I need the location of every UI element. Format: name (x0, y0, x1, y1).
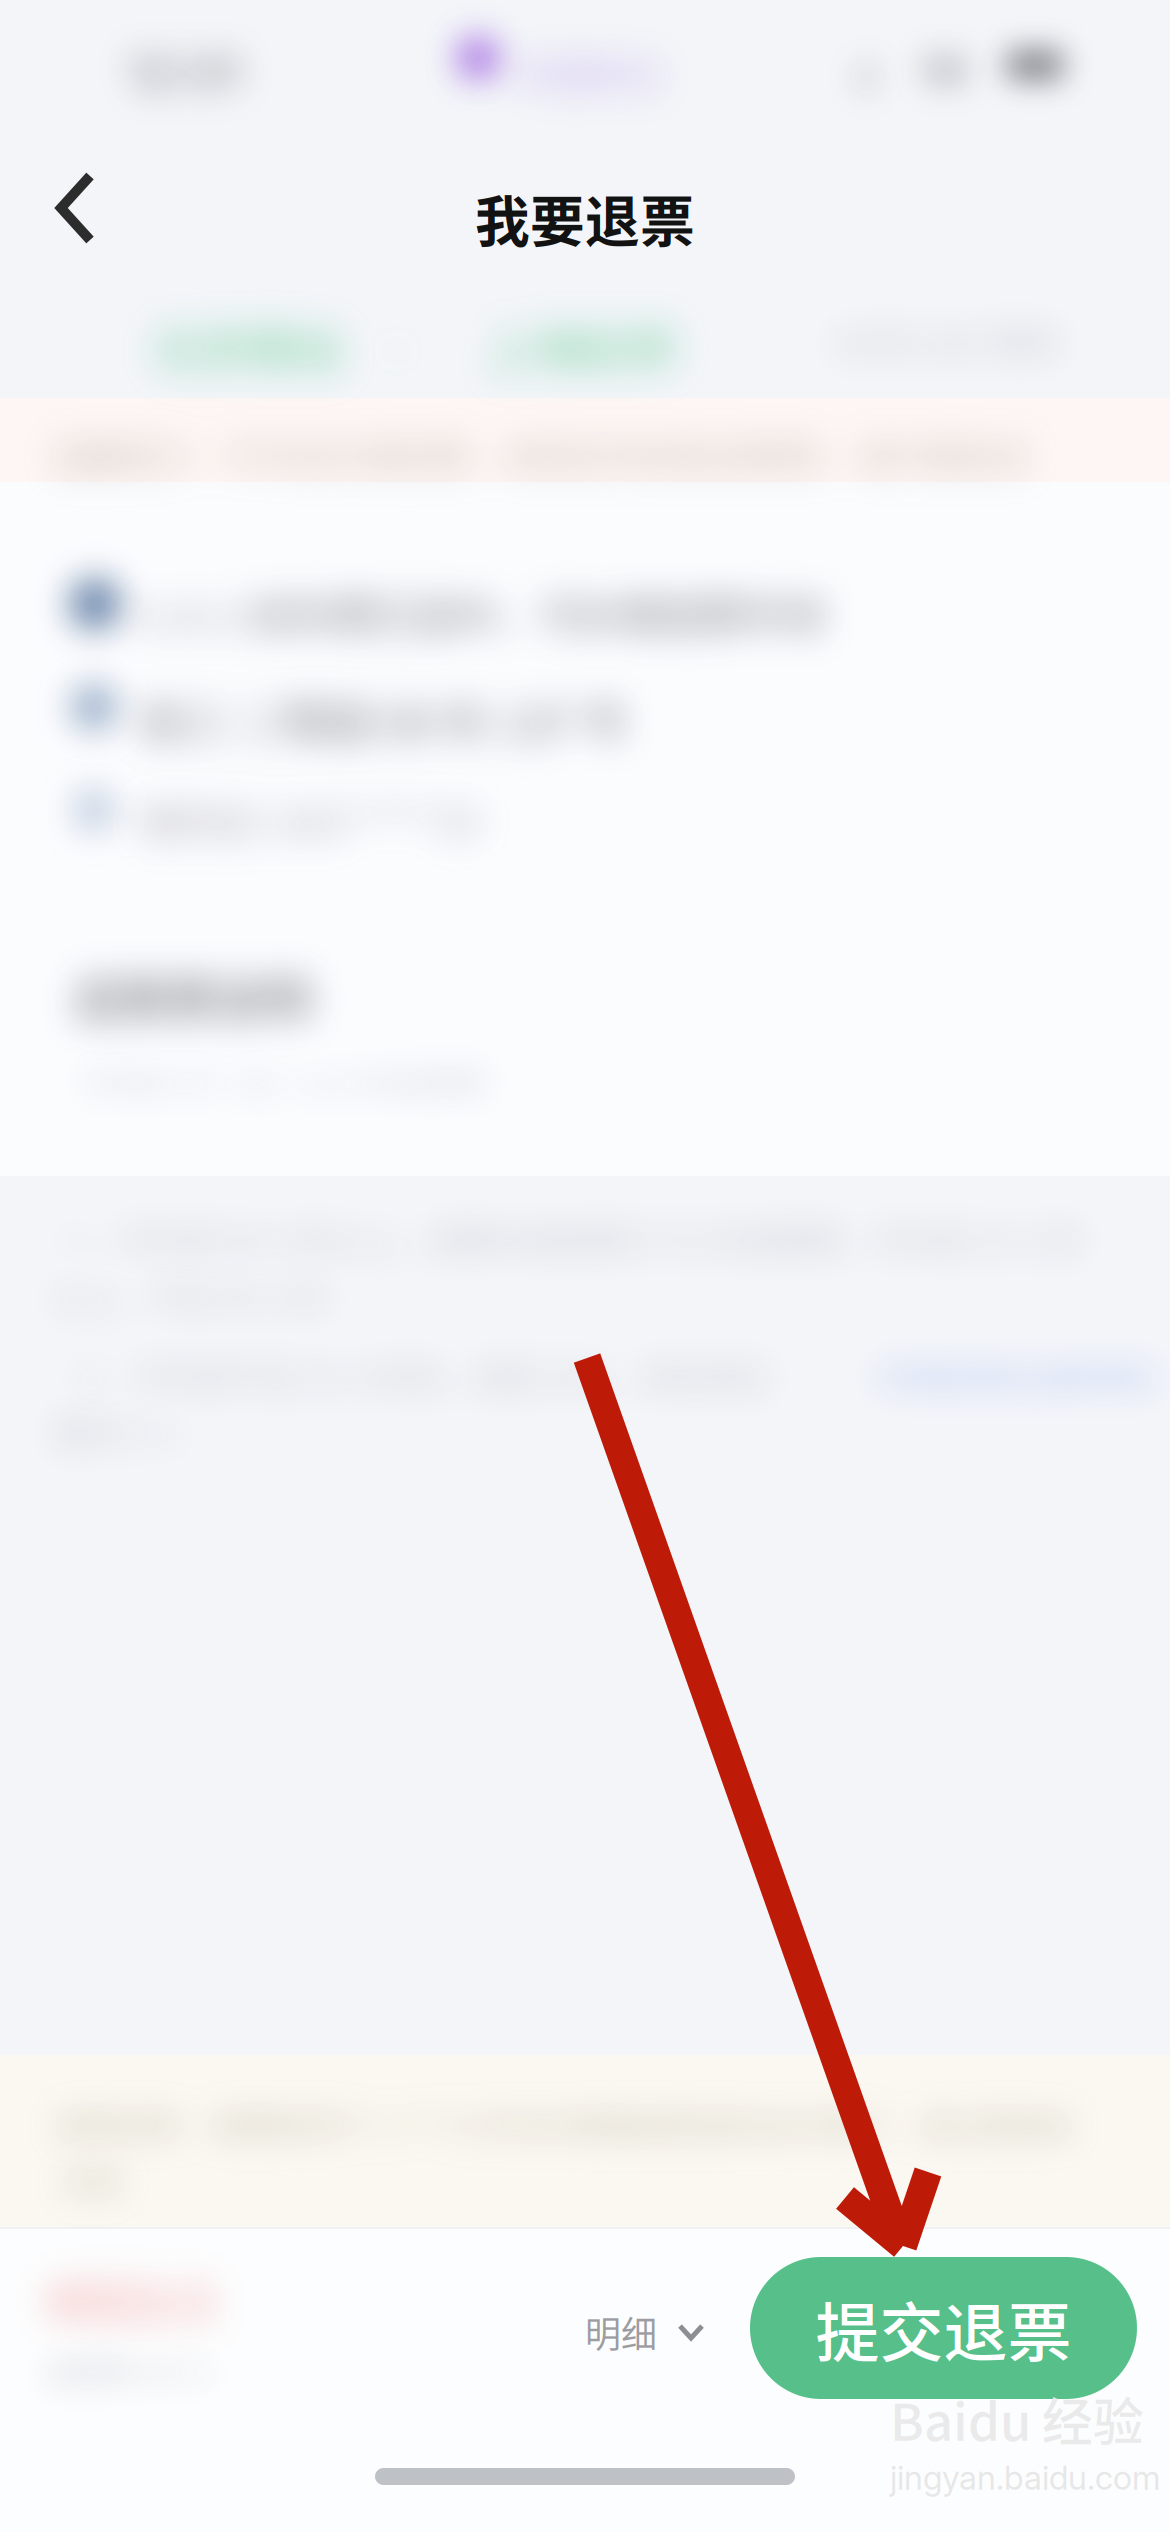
staticText: 提交退票 (815, 2282, 1071, 2374)
staticText: 退票费说明 (72, 502, 312, 571)
staticText: 一、开车前 48 小时以上，退票时收取票价 5% 的退票费，开车前 24 小时 (58, 756, 1083, 802)
staticText: 明细 (585, 2306, 657, 2358)
staticText: jingyan.baidu.com (890, 2457, 1160, 2498)
staticText: 第四十八 (53, 948, 181, 994)
button[interactable]: 返回 (16, 153, 136, 263)
staticText: Baidu 经验 (890, 2382, 1144, 2455)
staticText: 开车前 8 天（含）以上不收退票费 (82, 602, 487, 641)
staticText: 以上、不足 48 小时 (53, 813, 327, 859)
button[interactable]: 提交退票 (750, 2257, 1137, 2399)
staticText: 我要退票 (475, 178, 695, 257)
staticText: 退票说明：退票款将于 1-7 个工作日内原路退回您的支付账户，请注意查收 (54, 1642, 1074, 1686)
staticText: 身份证 1101*****23 (138, 331, 480, 387)
staticText: 张三 二等座 08 车 12F 号 (138, 227, 628, 293)
button[interactable]: 明细 (575, 2284, 715, 2380)
